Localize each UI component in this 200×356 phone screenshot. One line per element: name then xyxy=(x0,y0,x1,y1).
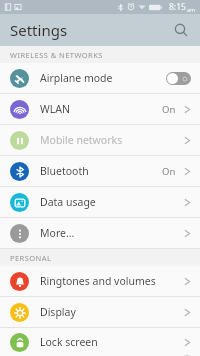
staticText: PERSONAL xyxy=(10,253,52,263)
button[interactable]: Display xyxy=(0,297,200,327)
staticText: Ringtones and volumes xyxy=(40,274,156,288)
staticText: On xyxy=(162,103,176,116)
staticText: On xyxy=(162,165,176,178)
staticText: More... xyxy=(40,226,75,240)
staticText: Lock screen xyxy=(40,335,98,349)
button[interactable]: More... xyxy=(0,218,200,248)
button[interactable]: Bluetooth xyxy=(0,156,200,186)
staticText: Display xyxy=(40,305,76,319)
staticText: WIRELESS & NETWORKS xyxy=(10,50,103,60)
button[interactable]: Lock screen xyxy=(0,328,200,356)
button[interactable]: Airplane mode xyxy=(0,63,200,93)
button[interactable]: WLAN xyxy=(0,94,200,124)
button[interactable]: Ringtones and volumes xyxy=(0,266,200,296)
staticText: Data usage xyxy=(40,195,96,209)
button[interactable]: Mobile networks xyxy=(0,125,200,155)
staticText: Airplane mode xyxy=(40,71,113,85)
staticText: Bluetooth xyxy=(40,164,89,178)
staticText: 8:15 xyxy=(169,1,186,13)
staticText: Mobile networks xyxy=(40,133,123,147)
staticText: WLAN xyxy=(40,102,70,116)
staticText: Settings xyxy=(10,20,68,40)
button[interactable]: Data usage xyxy=(0,187,200,217)
button[interactable]: Airplane mode toggle xyxy=(166,72,191,85)
staticText: am xyxy=(187,6,196,13)
button[interactable]: Search xyxy=(168,17,194,43)
